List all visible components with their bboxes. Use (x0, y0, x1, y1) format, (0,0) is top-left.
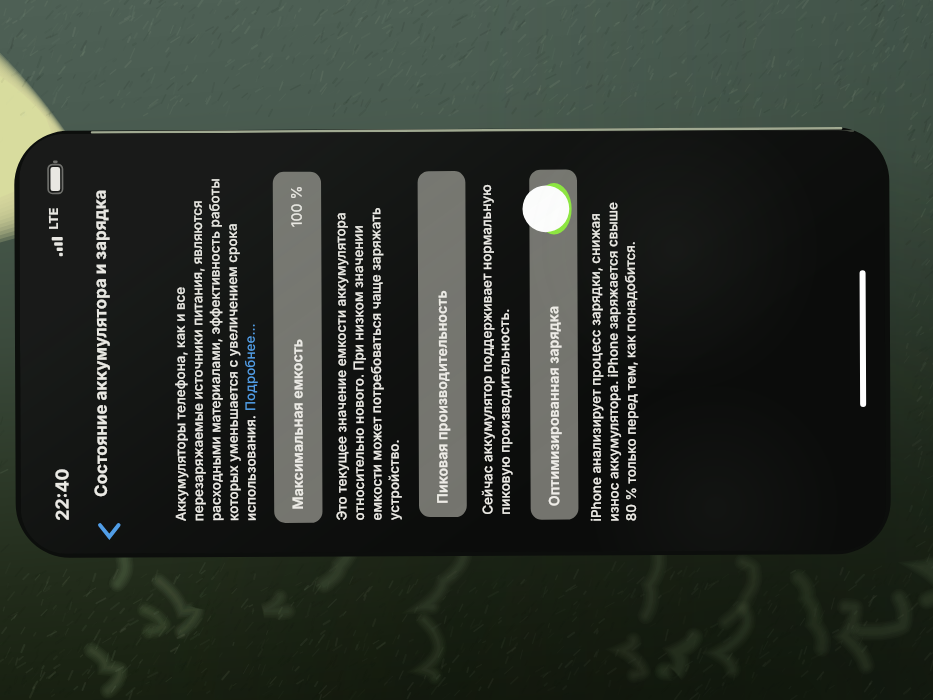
button[interactable]: Photo of iPhone battery health screen (0, 0, 933, 700)
